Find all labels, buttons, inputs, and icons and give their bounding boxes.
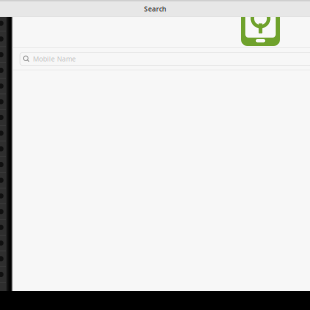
button[interactable]: Menu item [0,16,6,31]
button[interactable]: Menu item [0,141,6,157]
staticText: Search [144,5,166,13]
button[interactable]: Menu item [0,267,6,283]
button[interactable]: Menu item [0,78,6,94]
button[interactable]: Menu item [0,204,6,220]
staticText: Mobile Name [33,55,76,63]
button[interactable]: Menu item [0,157,6,173]
button[interactable]: Menu item [0,31,6,47]
button[interactable]: Menu item [0,251,6,267]
button[interactable]: Menu item [0,188,6,204]
button[interactable]: Menu item [0,0,6,16]
button[interactable]: Menu item [0,126,6,141]
button[interactable]: Menu item [0,63,6,78]
button[interactable]: Menu item [0,110,6,126]
button[interactable]: Menu item [0,173,6,188]
button[interactable]: Menu item [0,47,6,63]
button[interactable]: Menu item [0,220,6,235]
button[interactable]: Menu item [0,94,6,110]
button[interactable]: Menu item [0,235,6,251]
button[interactable]: Mobile Name [20,52,310,65]
